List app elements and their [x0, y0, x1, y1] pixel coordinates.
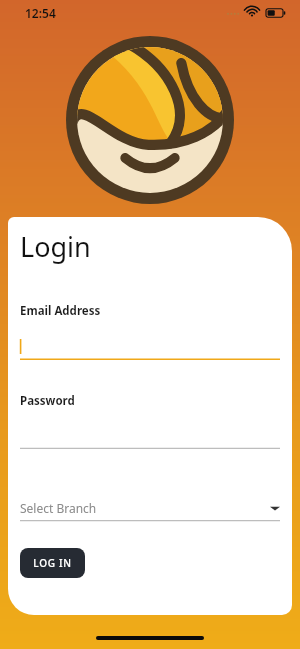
staticText: LOG IN [33, 556, 72, 570]
staticText: Select Branch [20, 500, 270, 516]
button[interactable]: Select Branch [20, 496, 280, 520]
button[interactable] [20, 338, 280, 360]
staticText: Password [20, 393, 75, 409]
staticText: Login [20, 228, 91, 265]
staticText: 12:54 [25, 5, 56, 21]
button[interactable]: LOG IN [20, 548, 85, 578]
button[interactable] [20, 433, 280, 449]
staticText: Email Address [20, 303, 101, 319]
